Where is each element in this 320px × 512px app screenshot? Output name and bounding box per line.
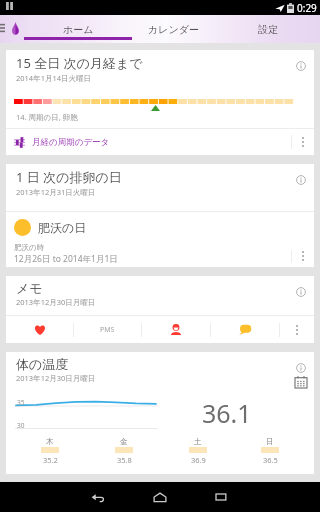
button[interactable]: More options (292, 129, 314, 155)
staticText: 木 (46, 437, 54, 446)
button[interactable]: Calendar (295, 376, 307, 388)
button[interactable]: Recent apps (191, 482, 253, 512)
staticText: 35 (17, 398, 25, 407)
staticText: 35.8 (117, 455, 132, 465)
staticText: メモ (16, 280, 43, 296)
staticText: 月経の周期のデータ (32, 137, 110, 148)
button[interactable]: More options (280, 316, 314, 343)
staticText: 36.9 (191, 455, 206, 465)
button[interactable]: 日 (250, 437, 290, 465)
button[interactable]: Home (129, 482, 191, 512)
staticText: 2013年12月30日月曜日 (16, 297, 96, 307)
staticText: 土 (194, 437, 202, 446)
button[interactable]: Info (296, 61, 306, 71)
staticText: 30 (17, 421, 25, 430)
staticText: 12月26日 to 2014年1月1日 (14, 253, 118, 265)
staticText: 36.5 (263, 455, 278, 465)
staticText: 2013年12月30日月曜日 (16, 373, 96, 383)
staticText: ホーム (63, 23, 94, 36)
staticText: 体の温度 (16, 356, 69, 372)
staticText: 36.1 (202, 396, 252, 430)
staticText: 15 全日 次の月経まで (16, 54, 143, 72)
button[interactable]: Info (296, 287, 306, 297)
button[interactable]: 木 (30, 437, 70, 465)
button[interactable]: Symptoms (142, 316, 210, 343)
button[interactable]: 土 (178, 437, 218, 465)
button[interactable]: Info (296, 363, 306, 373)
button[interactable]: Notes (211, 316, 279, 343)
button[interactable]: 金 (104, 437, 144, 465)
button[interactable]: 月経の周期のデータ (6, 129, 291, 155)
staticText: 14. 周期の日, 卵胞 (16, 112, 78, 122)
staticText: PMS (100, 325, 115, 335)
button[interactable]: 設定 (215, 15, 320, 43)
button[interactable]: Mood (6, 316, 73, 343)
button[interactable]: Info (296, 175, 306, 185)
staticText: 1 日 次の排卵の日 (16, 168, 122, 186)
staticText: 0:29 (297, 1, 317, 15)
button[interactable]: Navigation menu (0, 15, 22, 43)
staticText: カレンダー (148, 23, 199, 36)
button[interactable]: ホーム (24, 15, 132, 43)
staticText: 肥沃の時 (14, 243, 45, 252)
staticText: 金 (120, 437, 128, 446)
button[interactable]: Back (67, 482, 129, 512)
staticText: 日 (266, 437, 274, 446)
button[interactable]: カレンダー (132, 15, 215, 43)
staticText: 2013年12月31日火曜日 (16, 187, 96, 197)
staticText: 35.2 (43, 455, 58, 465)
staticText: 2014年1月14日火曜日 (16, 73, 92, 83)
staticText: 設定 (258, 23, 278, 36)
button[interactable]: More options (292, 212, 314, 267)
button[interactable]: PMS (74, 316, 141, 343)
staticText: 肥沃の日 (38, 220, 87, 235)
